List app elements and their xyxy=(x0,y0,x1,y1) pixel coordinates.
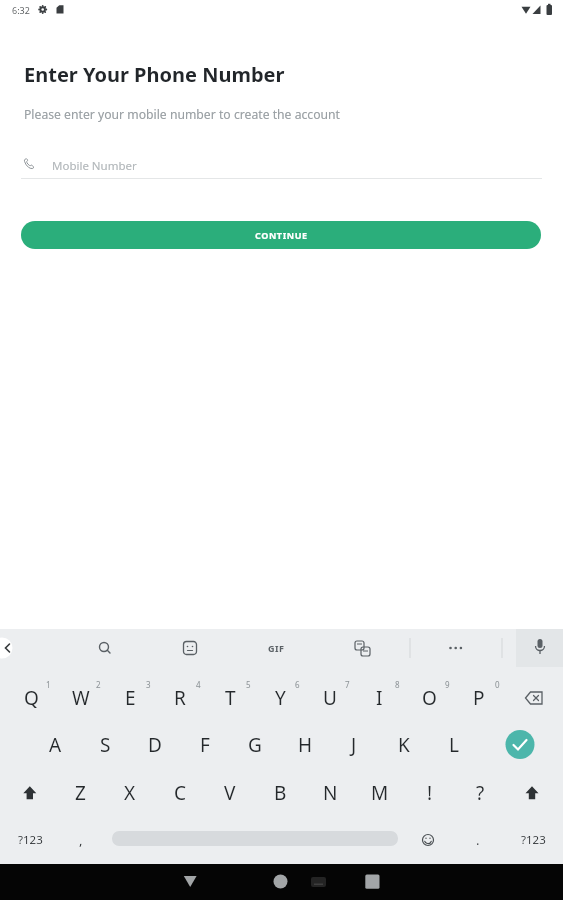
staticText: F xyxy=(200,732,210,758)
staticText: O xyxy=(422,685,437,711)
staticText: ? xyxy=(476,780,485,806)
staticText: M xyxy=(371,780,389,806)
staticText: Enter Your Phone Number xyxy=(24,61,285,88)
staticText: , xyxy=(79,831,83,849)
staticText: 2 xyxy=(96,679,101,689)
staticText: 5 xyxy=(246,679,251,689)
staticText: 6:32 xyxy=(12,4,30,16)
staticText: 8 xyxy=(395,679,400,689)
staticText: D xyxy=(148,732,162,758)
staticText: 1 xyxy=(46,679,51,689)
staticText: S xyxy=(100,732,111,758)
staticText: Q xyxy=(24,685,39,711)
staticText: T xyxy=(225,685,236,711)
staticText: Mobile Number xyxy=(52,158,137,174)
staticText: 4 xyxy=(196,679,201,689)
staticText: K xyxy=(398,732,410,758)
staticText: P xyxy=(473,685,485,711)
staticText: 0 xyxy=(495,679,500,689)
staticText: Please enter your mobile number to creat… xyxy=(24,106,341,123)
staticText: I xyxy=(376,685,383,711)
staticText: R xyxy=(174,685,186,711)
staticText: ?123 xyxy=(521,832,546,848)
staticText: 7 xyxy=(345,679,350,689)
staticText: L xyxy=(449,732,459,758)
staticText: B xyxy=(274,780,287,806)
staticText: A xyxy=(49,732,62,758)
staticText: . xyxy=(476,831,480,849)
staticText: N xyxy=(323,780,338,806)
staticText: W xyxy=(72,685,90,711)
staticText: Z xyxy=(75,780,86,806)
staticText: X xyxy=(124,780,136,806)
staticText: GIF xyxy=(268,642,285,654)
staticText: ! xyxy=(427,780,433,806)
staticText: 6 xyxy=(295,679,300,689)
staticText: V xyxy=(224,780,236,806)
staticText: ?123 xyxy=(18,832,43,848)
staticText: CONTINUE xyxy=(255,229,308,241)
staticText: J xyxy=(351,732,357,758)
staticText: U xyxy=(323,685,337,711)
staticText: C xyxy=(174,780,187,806)
staticText: 3 xyxy=(146,679,151,689)
staticText: H xyxy=(298,732,313,758)
staticText: E xyxy=(125,685,136,711)
staticText: 9 xyxy=(445,679,450,689)
staticText: Y xyxy=(275,685,286,711)
staticText: G xyxy=(248,732,262,758)
